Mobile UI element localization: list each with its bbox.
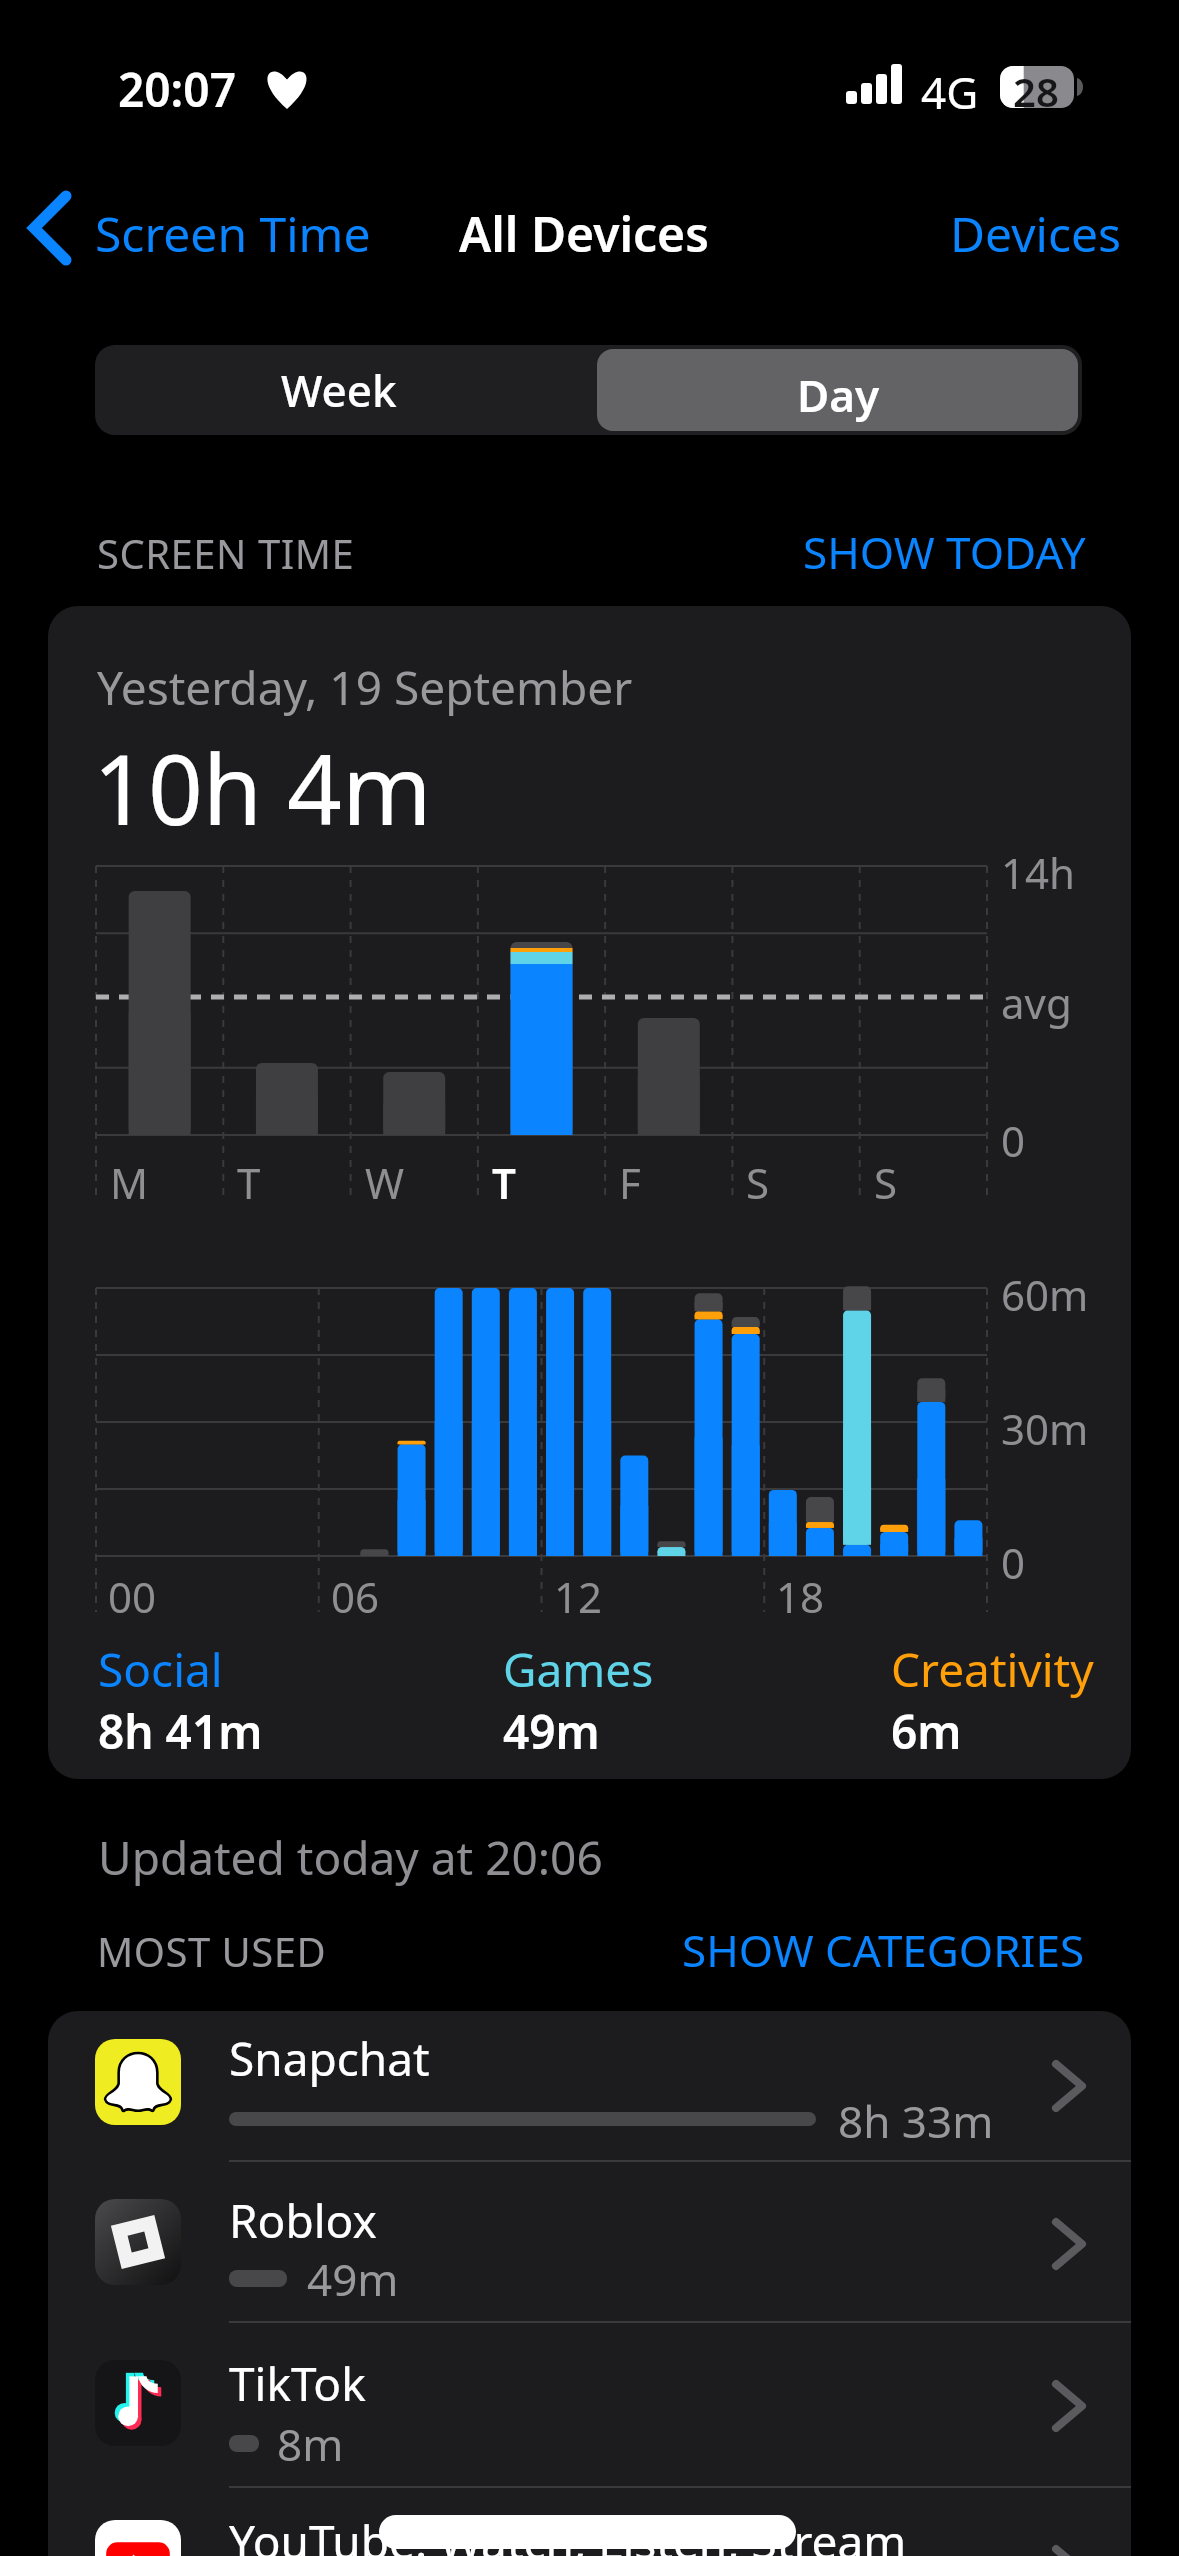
staticText: 6m xyxy=(891,1700,962,1763)
button[interactable]: SHOW CATEGORIES xyxy=(667,1916,1070,1976)
staticText: Yesterday, 19 September xyxy=(97,656,633,719)
staticText: SHOW TODAY xyxy=(803,522,1086,582)
staticText: 8h 41m xyxy=(98,1700,263,1763)
staticText: 28 xyxy=(1013,64,1059,118)
staticText: 20:07 xyxy=(118,58,236,121)
staticText: 4G xyxy=(921,62,979,122)
staticText: 8m xyxy=(277,2414,344,2474)
staticText: Week xyxy=(281,360,397,420)
staticText: 12 xyxy=(554,1568,603,1625)
button[interactable]: Screen Time xyxy=(20,180,400,280)
staticText: SHOW CATEGORIES xyxy=(682,1920,1085,1980)
button[interactable]: Roblox xyxy=(48,2161,1131,2322)
button[interactable]: Snapchat xyxy=(48,2011,1131,2161)
button[interactable]: TikTok xyxy=(48,2322,1131,2487)
staticText: Devices xyxy=(950,201,1122,266)
staticText: 49m xyxy=(503,1700,600,1763)
button[interactable]: YouTube: Watch, Listen, Stream xyxy=(48,2487,1131,2556)
staticText: Day xyxy=(797,365,880,425)
staticText: avg xyxy=(1001,974,1072,1031)
button[interactable]: Week xyxy=(95,349,582,431)
staticText: M xyxy=(110,1154,149,1211)
button[interactable]: SHOW TODAY xyxy=(788,518,1071,578)
staticText: MOST USED xyxy=(97,1924,327,1978)
staticText: Snapchat xyxy=(229,2027,430,2090)
staticText: Roblox xyxy=(229,2189,377,2252)
staticText: W xyxy=(365,1154,405,1211)
staticText: T xyxy=(492,1154,516,1211)
staticText: F xyxy=(619,1154,641,1211)
staticText: S xyxy=(874,1154,898,1211)
staticText: Screen Time xyxy=(95,201,371,266)
staticText: S xyxy=(746,1154,770,1211)
staticText: 06 xyxy=(331,1568,380,1625)
staticText: 49m xyxy=(307,2249,399,2309)
staticText: T xyxy=(237,1154,261,1211)
staticText: All Devices xyxy=(459,201,709,266)
staticText: Updated today at 20:06 xyxy=(98,1826,603,1889)
staticText: 30m xyxy=(1001,1400,1089,1457)
staticText: Creativity xyxy=(891,1638,1094,1701)
staticText: 18 xyxy=(776,1568,825,1625)
staticText: 14h xyxy=(1001,844,1076,901)
button[interactable]: Devices xyxy=(930,185,1150,275)
staticText: 0 xyxy=(1001,1112,1026,1169)
staticText: TikTok xyxy=(229,2352,366,2415)
staticText: 10h 4m xyxy=(93,722,432,853)
staticText: 60m xyxy=(1001,1266,1089,1323)
staticText: SCREEN TIME xyxy=(97,526,355,580)
button[interactable]: Day xyxy=(597,349,1078,431)
staticText: 00 xyxy=(108,1568,157,1625)
staticText: 8h 33m xyxy=(838,2091,994,2151)
staticText: YouTube: Watch, Listen, Stream xyxy=(229,2510,907,2556)
staticText: Social xyxy=(98,1638,223,1701)
staticText: 0 xyxy=(1001,1534,1026,1591)
staticText: Games xyxy=(503,1638,654,1701)
